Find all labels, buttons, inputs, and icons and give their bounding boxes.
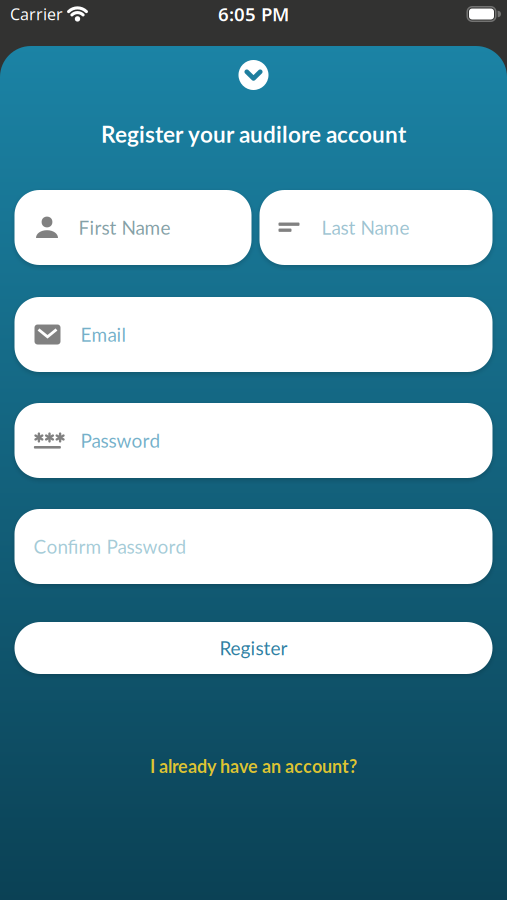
staticText: Register your audilore account: [101, 120, 406, 147]
staticText: Password: [80, 429, 160, 452]
staticText: I already have an account?: [150, 755, 357, 777]
button[interactable]: Confirm Password: [14, 509, 492, 584]
button[interactable]: I already have an account?: [150, 755, 357, 777]
staticText: Last Name: [321, 216, 409, 239]
button[interactable]: Email: [14, 297, 492, 372]
staticText: First Name: [78, 216, 170, 239]
staticText: Register: [219, 637, 287, 659]
staticText: Carrier: [10, 3, 63, 25]
staticText: Confirm Password: [33, 535, 186, 558]
staticText: Email: [80, 323, 125, 346]
button[interactable]: Dismiss: [238, 60, 268, 90]
button[interactable]: Last Name: [259, 190, 492, 265]
button[interactable]: Password: [14, 403, 492, 478]
staticText: 6:05 PM: [218, 1, 289, 27]
button[interactable]: First Name: [14, 190, 251, 265]
button[interactable]: Register: [14, 622, 492, 674]
